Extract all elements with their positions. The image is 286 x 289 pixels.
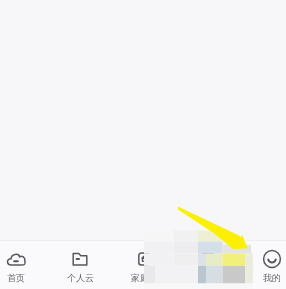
staticText: 我的 [263, 272, 281, 283]
button[interactable]: Personal cloud [52, 241, 108, 289]
button[interactable]: Mine [244, 241, 286, 289]
staticText: 家庭云 [131, 272, 158, 283]
staticText: 传输 [199, 272, 217, 283]
button[interactable]: Transfer [180, 241, 236, 289]
staticText: 个人云 [67, 272, 94, 283]
button[interactable]: Home [0, 241, 44, 289]
button[interactable]: Family cloud [116, 241, 172, 289]
staticText: 首页 [7, 272, 25, 283]
